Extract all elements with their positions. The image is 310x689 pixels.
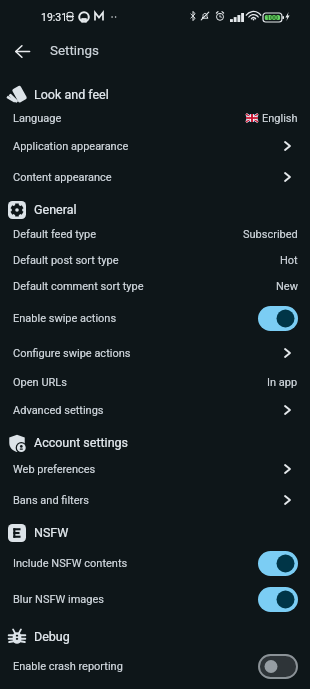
staticText: Open URLs: [13, 376, 267, 389]
staticText: Enable swipe actions: [13, 312, 258, 325]
button[interactable]: Bans and filters: [0, 485, 310, 516]
staticText: Include NSFW contents: [13, 557, 258, 570]
staticText: In app: [267, 376, 298, 389]
staticText: New: [276, 280, 298, 293]
button[interactable]: Language: [0, 105, 310, 131]
button[interactable]: Open URLs: [0, 369, 310, 395]
staticText: Debug: [34, 629, 70, 644]
button[interactable]: Default post sort type: [0, 247, 310, 273]
button[interactable]: Configure swipe actions: [0, 338, 310, 369]
staticText: Language: [13, 112, 246, 125]
staticText: Default comment sort type: [13, 280, 276, 293]
staticText: Look and feel: [34, 87, 109, 102]
staticText: NSFW: [34, 525, 69, 540]
button[interactable]: Enable crash reporting: [0, 648, 310, 685]
staticText: Blur NSFW images: [13, 593, 258, 606]
button[interactable]: Back: [10, 39, 35, 64]
staticText: Advanced settings: [13, 404, 284, 417]
staticText: Bans and filters: [13, 494, 284, 507]
staticText: Application appearance: [13, 140, 284, 153]
button[interactable]: Application appearance: [0, 131, 310, 162]
staticText: Default post sort type: [13, 254, 280, 267]
button[interactable]: Default feed type: [0, 221, 310, 247]
staticText: Settings: [50, 43, 99, 59]
staticText: Enable crash reporting: [13, 660, 258, 673]
staticText: Configure swipe actions: [13, 347, 284, 360]
button[interactable]: Web preferences: [0, 454, 310, 485]
staticText: Default feed type: [13, 228, 243, 241]
button[interactable]: Content appearance: [0, 162, 310, 193]
staticText: English: [262, 112, 298, 125]
button[interactable]: Default comment sort type: [0, 273, 310, 299]
button[interactable]: Include NSFW contents: [0, 545, 310, 582]
button[interactable]: Advanced settings: [0, 395, 310, 426]
staticText: 19:31: [41, 11, 68, 23]
button[interactable]: Enable swipe actions: [0, 300, 310, 337]
staticText: Content appearance: [13, 171, 284, 184]
staticText: Account settings: [34, 435, 129, 450]
staticText: Subscribed: [243, 228, 298, 241]
staticText: General: [34, 202, 77, 217]
staticText: 100: [266, 14, 279, 22]
staticText: Web preferences: [13, 463, 284, 476]
staticText: Hot: [280, 254, 298, 267]
button[interactable]: Blur NSFW images: [0, 581, 310, 618]
